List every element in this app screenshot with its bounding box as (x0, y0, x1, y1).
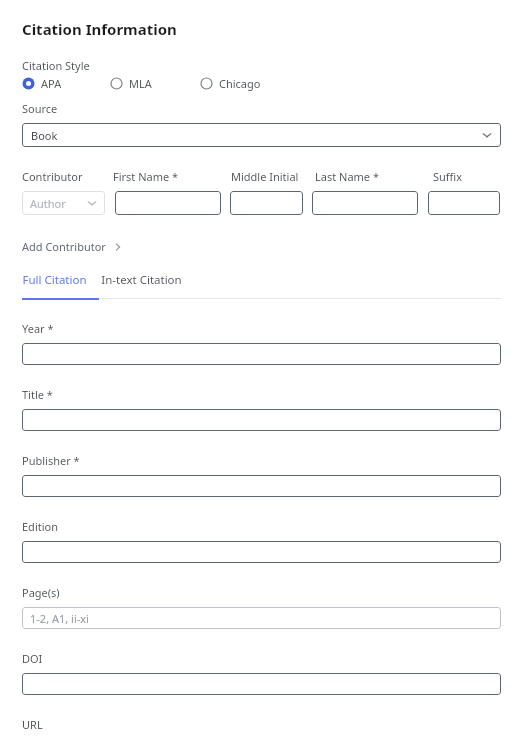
button[interactable] (428, 191, 500, 215)
staticText: MLA (129, 76, 152, 91)
button[interactable]: APA (22, 76, 66, 91)
button[interactable]: Full Citation (22, 272, 87, 288)
staticText: Chicago (219, 76, 261, 91)
button[interactable]: 1-2, A1, ii-xi (22, 607, 501, 629)
button[interactable] (22, 475, 501, 497)
button[interactable] (230, 191, 303, 215)
staticText: Suffix (433, 169, 463, 184)
staticText: Publisher * (22, 453, 80, 468)
staticText: Title * (22, 387, 53, 402)
staticText: Year * (22, 321, 54, 336)
staticText: Source (22, 101, 58, 116)
button[interactable]: Book (22, 123, 501, 147)
staticText: Author (30, 196, 66, 211)
staticText: First Name * (113, 169, 179, 184)
staticText: Add Contributor (22, 239, 106, 254)
staticText: Edition (22, 519, 58, 534)
button[interactable]: Author (22, 191, 105, 215)
button[interactable] (22, 409, 501, 431)
staticText: Last Name * (315, 169, 379, 184)
staticText: Full Citation (22, 272, 87, 288)
button[interactable] (22, 541, 501, 563)
button[interactable]: Chicago (200, 76, 265, 91)
staticText: 1-2, A1, ii-xi (30, 611, 89, 626)
staticText: Middle Initial (231, 169, 299, 184)
button[interactable] (115, 191, 221, 215)
button[interactable]: Add Contributor (22, 239, 123, 254)
staticText: DOI (22, 651, 43, 666)
button[interactable]: MLA (110, 76, 156, 91)
button[interactable] (312, 191, 418, 215)
button[interactable] (22, 673, 501, 695)
staticText: Contributor (22, 169, 83, 184)
staticText: In-text Citation (101, 272, 182, 288)
staticText: URL (22, 717, 43, 732)
staticText: Citation Style (22, 58, 90, 73)
staticText: APA (41, 76, 62, 91)
button[interactable] (22, 343, 501, 365)
staticText: Citation Information (22, 19, 177, 39)
staticText: Book (31, 128, 58, 143)
staticText: Page(s) (22, 585, 60, 600)
button[interactable]: In-text Citation (101, 272, 182, 288)
